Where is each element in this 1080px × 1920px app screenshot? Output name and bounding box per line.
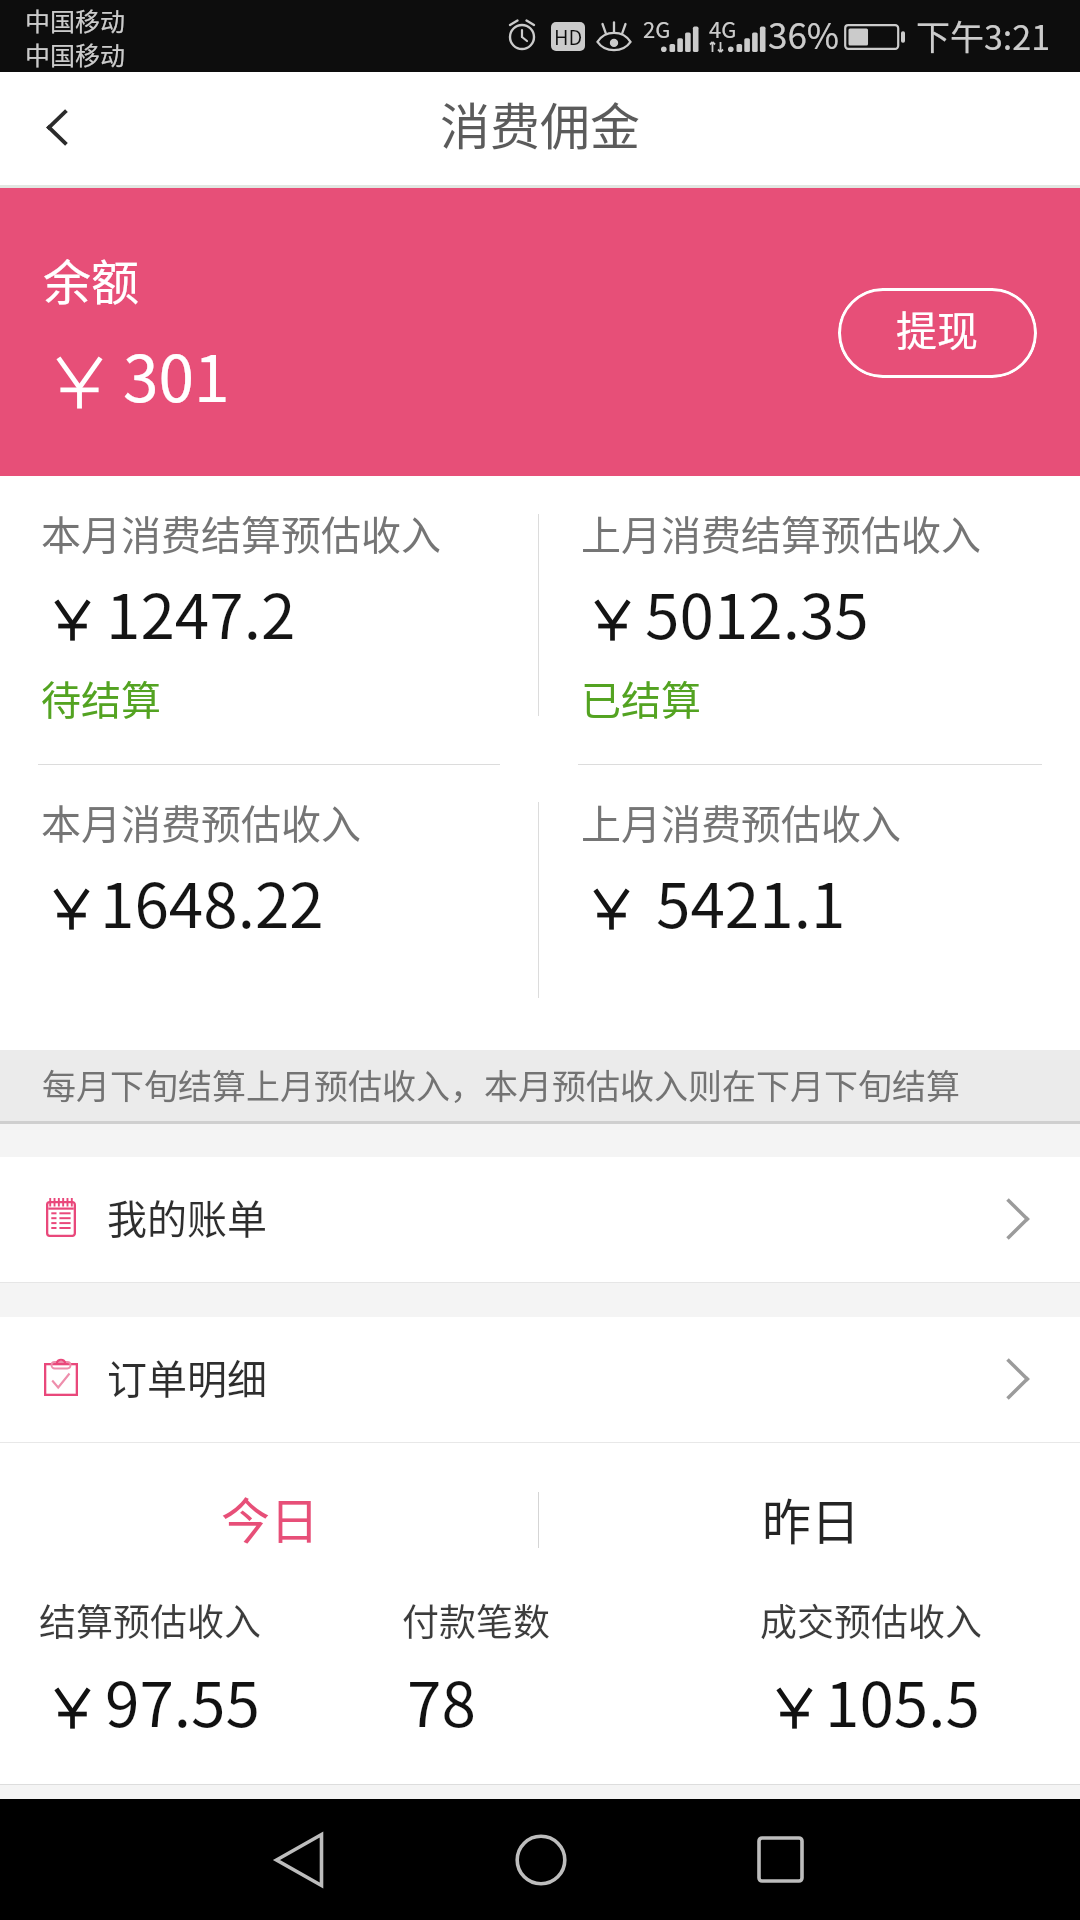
button[interactable]: Recents xyxy=(710,1799,850,1920)
staticText: 97.55 xyxy=(105,1655,260,1745)
staticText: 今日 xyxy=(221,1482,320,1553)
button[interactable]: Back xyxy=(229,1799,369,1920)
button[interactable]: 昨日 xyxy=(693,1479,929,1557)
staticText: 余额 xyxy=(43,244,140,314)
staticText: 78 xyxy=(407,1655,476,1745)
button[interactable]: 我的账单 xyxy=(0,1157,1080,1282)
staticText: 下午3:21 xyxy=(916,11,1051,60)
staticText: 成交预估收入 xyxy=(760,1593,982,1647)
staticText: 中国移动 xyxy=(25,2,126,38)
staticText: 消费佣金 xyxy=(440,87,640,159)
button[interactable]: Home xyxy=(471,1799,611,1920)
staticText: 上月消费预估收入 xyxy=(581,793,901,851)
staticText: 5421.1 xyxy=(656,856,846,946)
staticText: 订单明细 xyxy=(107,1348,267,1406)
staticText: 4G xyxy=(709,12,737,44)
staticText: HD xyxy=(554,22,583,51)
button[interactable]: 提现 xyxy=(838,288,1037,378)
staticText: 每月下旬结算上月预估收入，本月预估收入则在下月下旬结算 xyxy=(42,1060,960,1109)
staticText: 本月消费预估收入 xyxy=(41,793,361,851)
staticText: 中国移动 xyxy=(25,36,126,72)
staticText: 5012.35 xyxy=(645,567,869,657)
staticText: 付款笔数 xyxy=(402,1593,550,1647)
staticText: 36% xyxy=(768,8,840,59)
staticText: 昨日 xyxy=(762,1483,861,1554)
staticText: 我的账单 xyxy=(107,1188,267,1246)
staticText: 上月消费结算预估收入 xyxy=(581,504,981,562)
staticText: 301 xyxy=(123,328,230,421)
staticText: 1648.22 xyxy=(100,856,324,946)
staticText: 已结算 xyxy=(581,669,701,727)
staticText: 105.5 xyxy=(825,1655,980,1745)
button[interactable]: 订单明细 xyxy=(0,1317,1080,1442)
staticText: 2G xyxy=(643,12,671,44)
staticText: 1247.2 xyxy=(106,567,296,657)
button[interactable]: 今日 xyxy=(152,1478,388,1556)
button[interactable]: Back xyxy=(0,72,116,184)
staticText: 提现 xyxy=(896,298,978,357)
staticText: 结算预估收入 xyxy=(39,1593,261,1647)
staticText: 本月消费结算预估收入 xyxy=(41,504,441,562)
staticText: 待结算 xyxy=(41,669,161,727)
